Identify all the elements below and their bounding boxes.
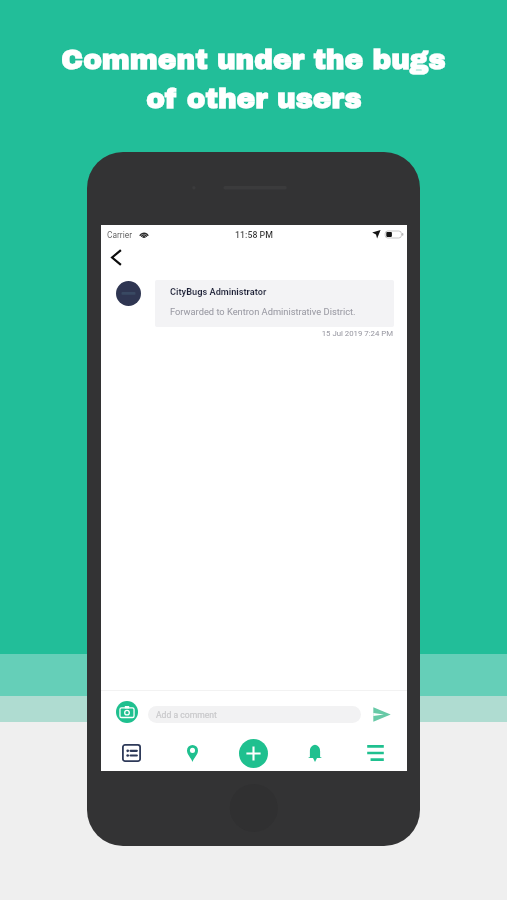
button[interactable]: Add a comment — [148, 706, 361, 723]
staticText: Add a comment — [156, 710, 217, 720]
staticText: 11:58 PM — [101, 230, 407, 240]
button[interactable]: Send — [370, 702, 394, 726]
staticText: Forwarded to Kentron Administrative Dist… — [170, 306, 356, 317]
staticText: of other users — [146, 83, 362, 113]
button[interactable]: Add report — [223, 735, 284, 771]
staticText: Comment under the bugs — [61, 44, 446, 74]
staticText: CityBugs Administrator — [170, 286, 267, 297]
button[interactable]: Menu — [345, 735, 406, 771]
staticText: 15 Jul 2019 7:24 PM — [101, 329, 393, 338]
button[interactable]: Back — [102, 243, 130, 271]
button[interactable]: Map — [162, 735, 223, 771]
button[interactable]: CityBugs Administrator — [155, 280, 394, 327]
button[interactable]: Reports list — [101, 735, 162, 771]
staticText: Carrier — [107, 230, 133, 240]
button[interactable]: Notifications — [284, 735, 345, 771]
button[interactable]: Add photo — [116, 701, 138, 723]
